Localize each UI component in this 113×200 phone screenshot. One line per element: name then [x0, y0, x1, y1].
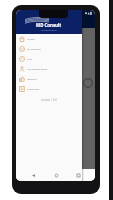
- staticText: Opinions: [27, 78, 37, 81]
- staticText: Accueil: [27, 38, 35, 41]
- button[interactable]: Opinions: [16, 74, 82, 84]
- staticText: Consultation Médicale: [41, 29, 57, 31]
- staticText: Se connecter: [27, 48, 41, 51]
- button[interactable]: Back: [28, 170, 38, 180]
- staticText: Paramètres: [27, 88, 40, 91]
- button[interactable]: Se connecter: [16, 44, 82, 54]
- button[interactable]: Aide: [16, 54, 82, 64]
- staticText: Nos collaborateurs: [27, 68, 48, 71]
- staticText: MD Consult: [36, 22, 62, 28]
- staticText: ● ▲ ▊: [85, 11, 93, 14]
- button[interactable]: Recent apps: [73, 170, 83, 180]
- button[interactable]: Nos collaborateurs: [16, 64, 82, 74]
- button[interactable]: Accueil: [16, 34, 82, 44]
- staticText: Aide: [27, 58, 32, 61]
- staticText: version 1.0.4: [16, 98, 82, 102]
- button[interactable]: Home: [51, 170, 61, 180]
- button[interactable]: Paramètres: [16, 84, 82, 94]
